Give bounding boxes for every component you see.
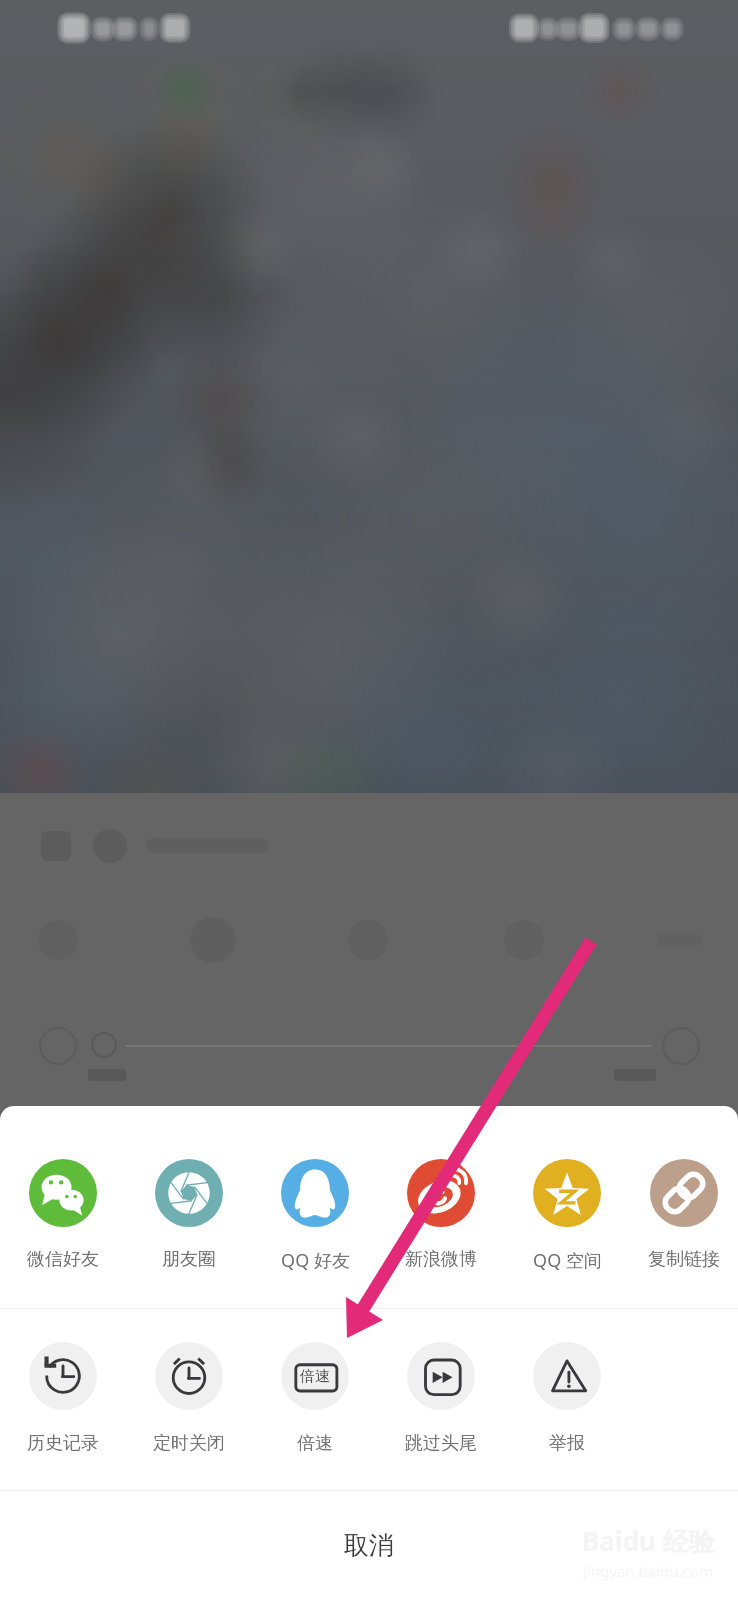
button[interactable]: 新浪微博 xyxy=(378,1159,504,1271)
other: 历史记录 xyxy=(29,1342,97,1410)
staticText: 取消 xyxy=(344,1530,394,1561)
other: QQ 空间 xyxy=(533,1159,601,1227)
staticText: 倍速 xyxy=(297,1432,333,1455)
staticText: QQ 好友 xyxy=(281,1248,350,1273)
button[interactable]: QQ 空间 xyxy=(504,1159,630,1273)
other: 朋友圈 xyxy=(155,1159,223,1227)
staticText: 微信好友 xyxy=(27,1248,99,1271)
other: 跳过头尾 xyxy=(407,1342,475,1410)
staticText: 举报 xyxy=(549,1432,585,1455)
staticText: 朋友圈 xyxy=(162,1248,216,1271)
staticText: 倍速 xyxy=(300,1367,330,1386)
button[interactable]: 倍速 xyxy=(252,1342,378,1455)
other: 新浪微博 xyxy=(407,1159,475,1227)
other: 举报 xyxy=(533,1342,601,1410)
other: QQ 好友 xyxy=(281,1159,349,1227)
staticText: 定时关闭 xyxy=(153,1432,225,1455)
button[interactable]: 取消 xyxy=(0,1491,738,1600)
staticText: Baidu 经验 xyxy=(582,1523,715,1559)
other: 复制链接 xyxy=(650,1159,718,1227)
other: 微信好友 xyxy=(29,1159,97,1227)
staticText: 复制链接 xyxy=(648,1248,720,1271)
button[interactable]: QQ 好友 xyxy=(252,1159,378,1273)
button[interactable]: 微信好友 xyxy=(0,1159,126,1271)
staticText: QQ 空间 xyxy=(533,1248,602,1273)
other: annotation arrow xyxy=(0,0,738,1600)
other: 定时关闭 xyxy=(155,1342,223,1410)
other: 倍速 xyxy=(281,1342,349,1410)
button[interactable]: 跳过头尾 xyxy=(378,1342,504,1455)
staticText: 新浪微博 xyxy=(405,1248,477,1271)
button[interactable]: 举报 xyxy=(504,1342,630,1455)
staticText: jingyan.baidu.com xyxy=(583,1561,713,1581)
button[interactable]: 历史记录 xyxy=(0,1342,126,1455)
button[interactable]: 朋友圈 xyxy=(126,1159,252,1271)
staticText: 历史记录 xyxy=(27,1432,99,1455)
button[interactable]: 复制链接 xyxy=(630,1159,738,1271)
button[interactable]: 定时关闭 xyxy=(126,1342,252,1455)
staticText: 跳过头尾 xyxy=(405,1432,477,1455)
